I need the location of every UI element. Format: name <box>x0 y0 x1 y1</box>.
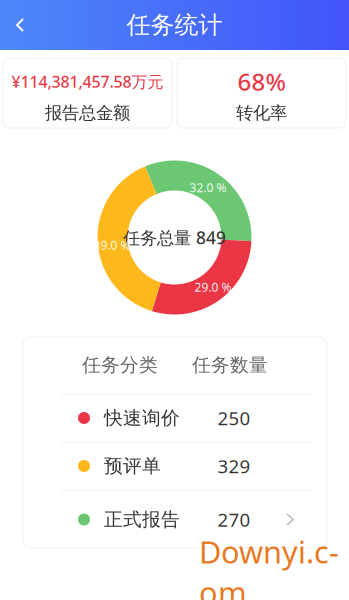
staticText: 正式报告 <box>104 508 180 531</box>
staticText: 快速询价 <box>104 406 180 429</box>
button[interactable]: 正式报告 <box>23 490 327 548</box>
staticText: 68% <box>237 66 285 97</box>
button[interactable]: 预评单 <box>23 442 327 489</box>
staticText: 任务数量 <box>192 353 268 376</box>
staticText: 39.0 % <box>93 237 130 253</box>
staticText: Downyi.com <box>199 531 339 600</box>
staticText: 任务总量 849 <box>123 226 226 249</box>
staticText: 任务统计 <box>126 10 222 40</box>
staticText: 任务分类 <box>82 353 158 376</box>
staticText: 32.0 % <box>189 179 226 195</box>
staticText: 329 <box>217 454 250 478</box>
staticText: 转化率 <box>236 102 287 124</box>
staticText: ¥114,381,457.58万元 <box>11 71 163 92</box>
staticText: 250 <box>217 406 250 430</box>
staticText: 29.0 % <box>194 279 231 295</box>
button[interactable]: 快速询价 <box>23 394 327 441</box>
staticText: 报告总金额 <box>45 102 130 124</box>
staticText: 270 <box>217 507 250 532</box>
staticText: 预评单 <box>104 454 161 477</box>
button[interactable]: Back <box>0 3 44 47</box>
